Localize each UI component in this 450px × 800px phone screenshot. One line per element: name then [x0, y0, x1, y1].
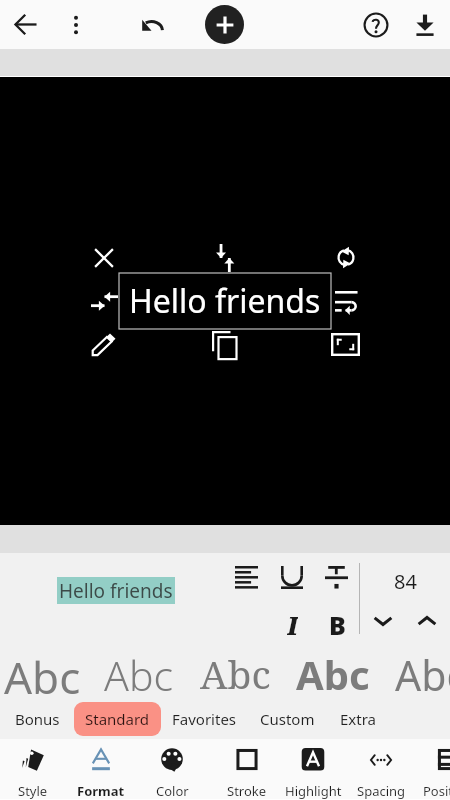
button[interactable]: Style [0, 739, 67, 799]
button[interactable]: Abc [189, 647, 281, 699]
staticText: Format [77, 782, 125, 799]
button[interactable]: Bonus [4, 702, 71, 736]
button[interactable]: Position [414, 739, 450, 799]
button[interactable]: Favorites [161, 702, 248, 736]
staticText: Highlight [285, 782, 342, 799]
staticText: Spacing [357, 782, 406, 799]
button[interactable]: Standard [74, 702, 161, 736]
staticText: Abc [296, 647, 370, 699]
staticText: Abc [395, 647, 450, 699]
button[interactable]: Italic [279, 608, 306, 635]
button[interactable]: Add [205, 5, 244, 44]
staticText: Color [156, 782, 189, 799]
button[interactable]: Stroke [213, 739, 281, 799]
button[interactable]: Color [138, 739, 206, 799]
button[interactable]: Wrap text [335, 291, 358, 312]
button[interactable]: Bold [324, 608, 351, 635]
button[interactable]: Resize horizontally [91, 292, 118, 310]
button[interactable]: Decrease size [369, 607, 397, 635]
button[interactable]: Help [353, 2, 398, 47]
button[interactable]: Text format [322, 563, 351, 592]
button[interactable]: Download [402, 2, 447, 47]
staticText: Favorites [172, 709, 237, 729]
button[interactable]: Extra [329, 702, 388, 736]
staticText: Standard [85, 709, 150, 729]
button[interactable]: Custom [249, 702, 326, 736]
staticText: Bonus [15, 709, 60, 729]
staticText: Custom [260, 709, 315, 729]
button[interactable]: Spacing [347, 739, 415, 799]
button[interactable]: Resize vertically [216, 244, 234, 272]
staticText: Abc [4, 647, 81, 699]
staticText: Abc [104, 647, 174, 699]
button[interactable]: 84 [378, 565, 432, 597]
staticText: Extra [340, 709, 377, 729]
staticText: Position [423, 782, 450, 799]
button[interactable]: Align left [232, 563, 261, 592]
staticText: Style [18, 782, 48, 799]
staticText: I [287, 608, 298, 635]
button[interactable]: Hello friends [57, 577, 175, 604]
staticText: B [329, 608, 346, 635]
button[interactable]: More options [53, 2, 98, 47]
button[interactable]: Undo [128, 2, 173, 47]
button[interactable]: Close [94, 248, 114, 268]
button[interactable]: Duplicate [212, 331, 237, 360]
button[interactable]: Abc [385, 647, 450, 699]
button[interactable]: Underline [278, 563, 306, 592]
button[interactable]: Abc [93, 647, 185, 699]
button[interactable]: Highlight [279, 739, 347, 799]
button[interactable]: Fit [331, 333, 360, 356]
staticText: Stroke [227, 782, 267, 799]
button[interactable]: Abc [287, 647, 379, 699]
button[interactable]: Back [3, 2, 48, 47]
button[interactable]: Edit [92, 333, 116, 356]
button[interactable]: Format [67, 739, 135, 799]
staticText: Hello friends [129, 279, 321, 323]
button[interactable]: Rotate [335, 244, 357, 271]
button[interactable]: Abc [0, 647, 88, 699]
staticText: Abc [200, 647, 271, 699]
button[interactable]: Increase size [413, 607, 441, 635]
staticText: 84 [394, 568, 417, 595]
staticText: Hello friends [59, 578, 173, 604]
